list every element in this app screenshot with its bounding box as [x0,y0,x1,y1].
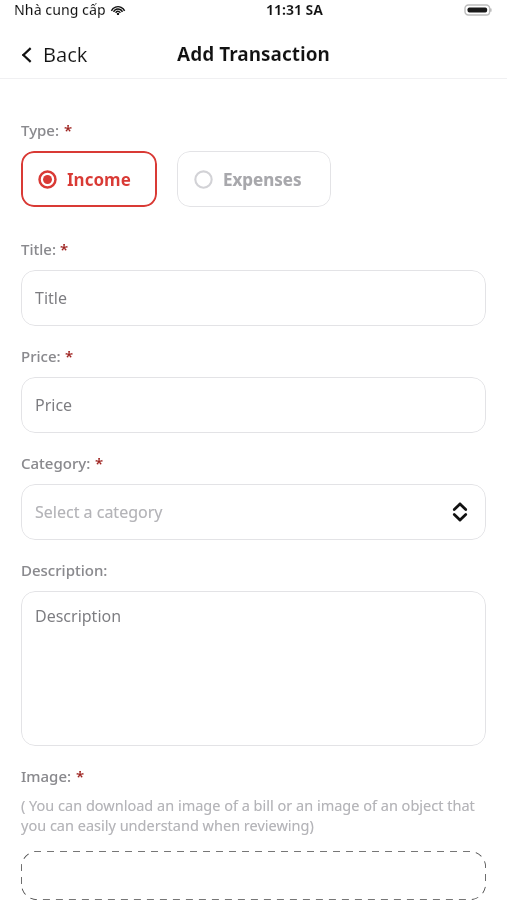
staticText: * [64,120,73,140]
button[interactable]: Price [21,377,486,433]
staticText: 11:31 SA [266,0,324,19]
staticText: * [95,453,104,473]
staticText: Title [35,287,67,309]
button[interactable]: Back [12,37,94,72]
staticText: Nhà cung cấp [14,0,106,19]
staticText: Description [35,605,122,627]
staticText: Expenses [223,168,302,191]
button[interactable]: Select a category [21,484,486,540]
staticText: Image: [21,766,72,786]
button[interactable]: Upload image [21,851,486,900]
staticText: Select a category [35,501,163,523]
button[interactable]: Title [21,270,486,326]
staticText: ( You can download an image of a bill or… [21,795,486,836]
staticText: Add Transaction [177,41,330,67]
staticText: Category: [21,453,91,473]
button[interactable]: Description [21,591,486,746]
staticText: Title: [21,239,56,259]
staticText: * [65,346,74,366]
staticText: Description: [21,560,108,580]
staticText: Back [43,41,88,68]
staticText: Income [67,168,131,191]
staticText: * [60,239,69,259]
other: Select a category [448,500,472,524]
staticText: Type: [21,120,60,140]
staticText: Price [35,394,73,416]
button[interactable]: Income [21,151,157,207]
staticText: Price: [21,346,61,366]
button[interactable]: Expenses [177,151,331,207]
staticText: * [76,766,85,786]
